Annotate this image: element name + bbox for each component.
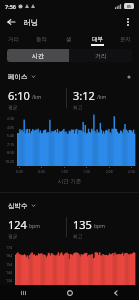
button[interactable]: 운지 [111,32,139,46]
button[interactable]: 뒤로 [93,285,139,300]
button[interactable]: 시간 [7,49,69,62]
staticText: 3:12 [73,88,95,103]
staticText: 동작 [36,36,47,43]
staticText: 대부 [92,36,103,43]
staticText: 6:10 [8,88,30,103]
staticText: 1:00 [61,169,68,174]
staticText: 평균 [8,233,18,239]
staticText: 2:30 [7,116,15,121]
staticText: 러닝 [23,18,38,27]
staticText: 7:15 [7,142,15,147]
button[interactable]: 뒤로 [3,14,19,30]
staticText: 거리 [95,52,107,60]
staticText: 평균 [8,104,18,110]
staticText: 2:00 [106,169,113,174]
staticText: 5:40 [7,133,15,138]
button[interactable]: 심박수 [8,199,131,212]
staticText: 거리 [8,36,19,43]
staticText: 144 [6,270,13,275]
staticText: 페이스 [8,73,28,81]
staticText: 시간 [32,52,44,60]
button[interactable]: 최근 앱 [0,285,47,300]
button[interactable]: 더보기 [120,14,136,30]
button[interactable]: 대부 [83,32,111,46]
staticText: bpm [29,223,40,230]
staticText: 135 [73,217,92,232]
staticText: /km [97,94,107,101]
staticText: 8:50 [7,150,15,155]
button[interactable]: 셑 [55,32,83,46]
button[interactable]: 홈 [47,285,93,300]
staticText: 심박수 [8,202,28,210]
staticText: 운지 [120,36,131,43]
staticText: 0:30 [38,169,45,174]
staticText: 174 [6,245,13,250]
staticText: 85 [127,4,132,9]
staticText: 124 [8,217,27,232]
staticText: 시간 기준 [0,177,139,185]
staticText: 7:56 [5,3,16,10]
staticText: 164 [6,253,13,258]
staticText: 154 [6,262,13,267]
button[interactable]: 거리 [69,49,132,62]
button[interactable]: 거리 [0,32,27,46]
staticText: 4:05 [7,125,15,130]
staticText: /km [32,94,42,101]
staticText: 0:00 [16,169,23,174]
staticText: 2:30 [128,169,135,174]
staticText: 1:30 [83,169,90,174]
staticText: 134 [6,278,13,283]
staticText: 셑 [66,36,72,43]
button[interactable]: 동작 [27,32,55,46]
staticText: 10:25 [5,159,15,164]
button[interactable]: 페이스 [8,70,131,83]
staticText: 최고 [73,104,83,110]
staticText: bpm [94,223,105,230]
staticText: 최고 [73,233,83,239]
